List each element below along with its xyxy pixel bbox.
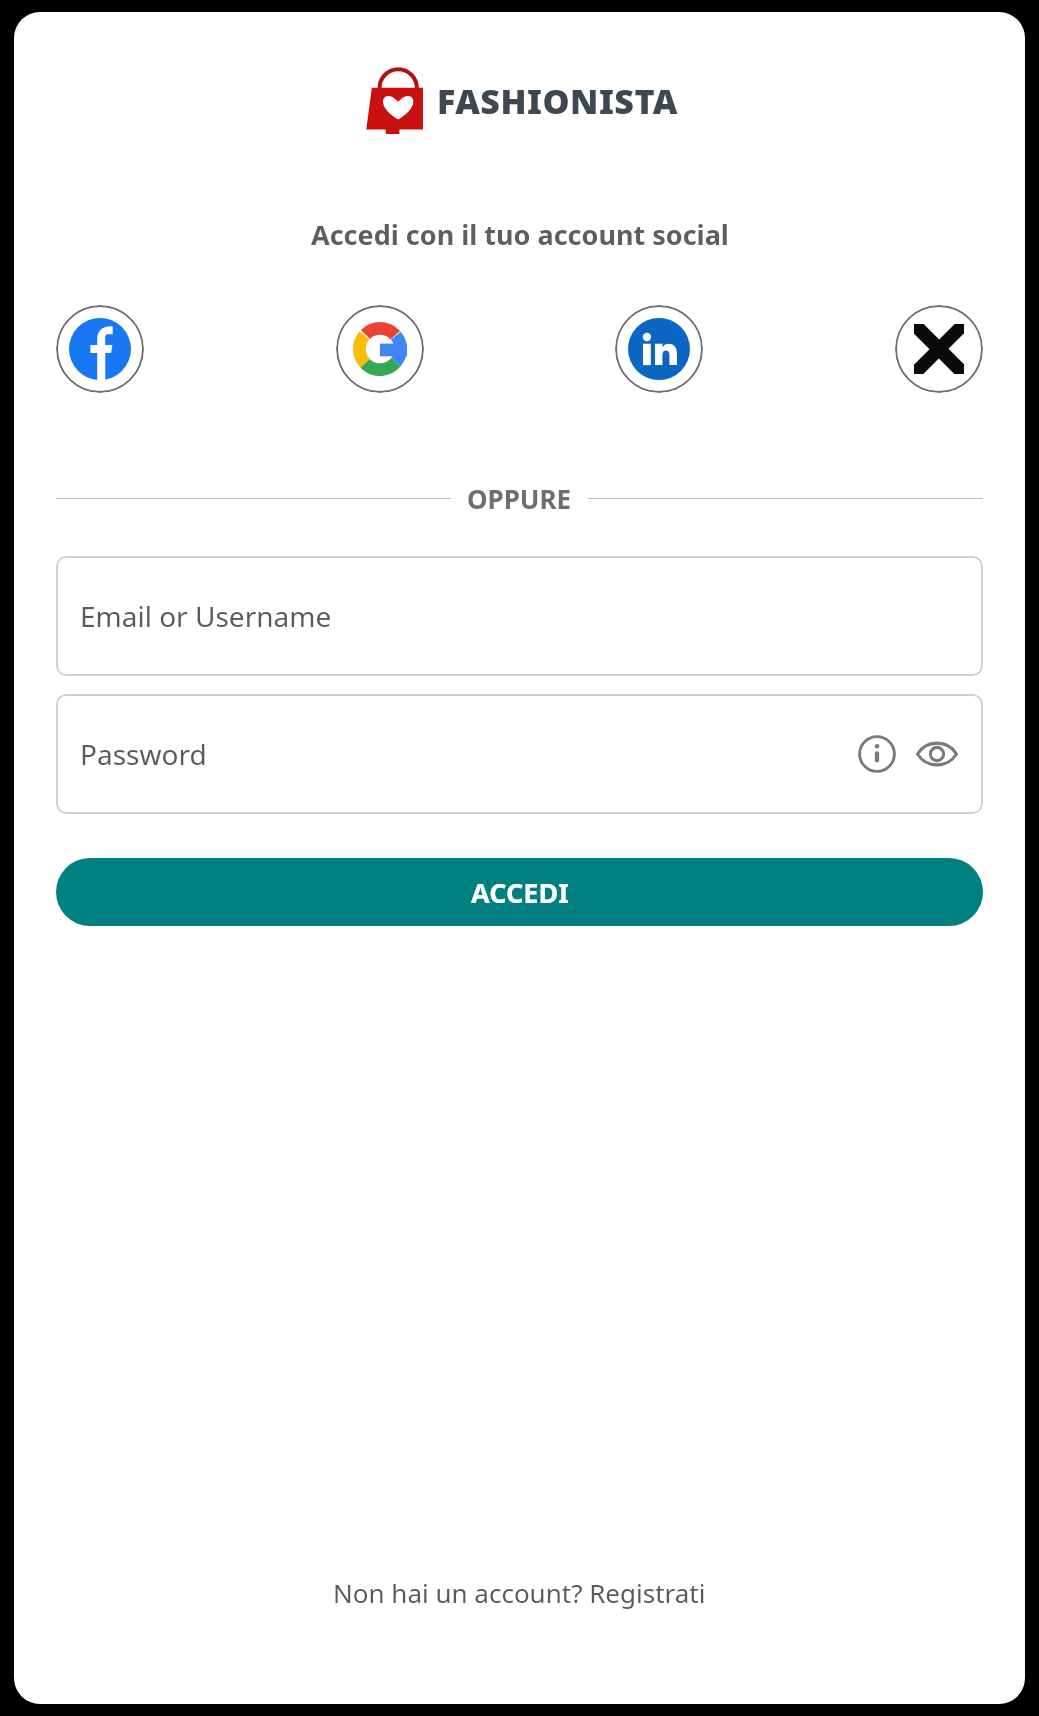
button[interactable]: Non hai un account? Registrati: [313, 1565, 726, 1620]
staticText: Password: [80, 735, 855, 773]
button[interactable]: Email or Username: [56, 556, 983, 676]
staticText: Accedi con il tuo account social: [311, 216, 729, 253]
button[interactable]: Sign in with LinkedIn: [615, 305, 703, 393]
button[interactable]: ACCEDI: [56, 858, 983, 926]
staticText: Email or Username: [80, 597, 959, 635]
button[interactable]: Sign in with X: [895, 305, 983, 393]
staticText: OPPURE: [467, 481, 572, 516]
staticText: ACCEDI: [471, 874, 569, 911]
staticText: FASHIONISTA: [437, 78, 678, 124]
staticText: Non hai un account? Registrati: [333, 1575, 706, 1610]
button[interactable]: Sign in with Google: [336, 305, 424, 393]
button[interactable]: Show password: [915, 732, 959, 776]
button[interactable]: Sign in with Facebook: [56, 305, 144, 393]
button[interactable]: Password info: [855, 732, 899, 776]
button[interactable]: Password: [56, 694, 983, 814]
